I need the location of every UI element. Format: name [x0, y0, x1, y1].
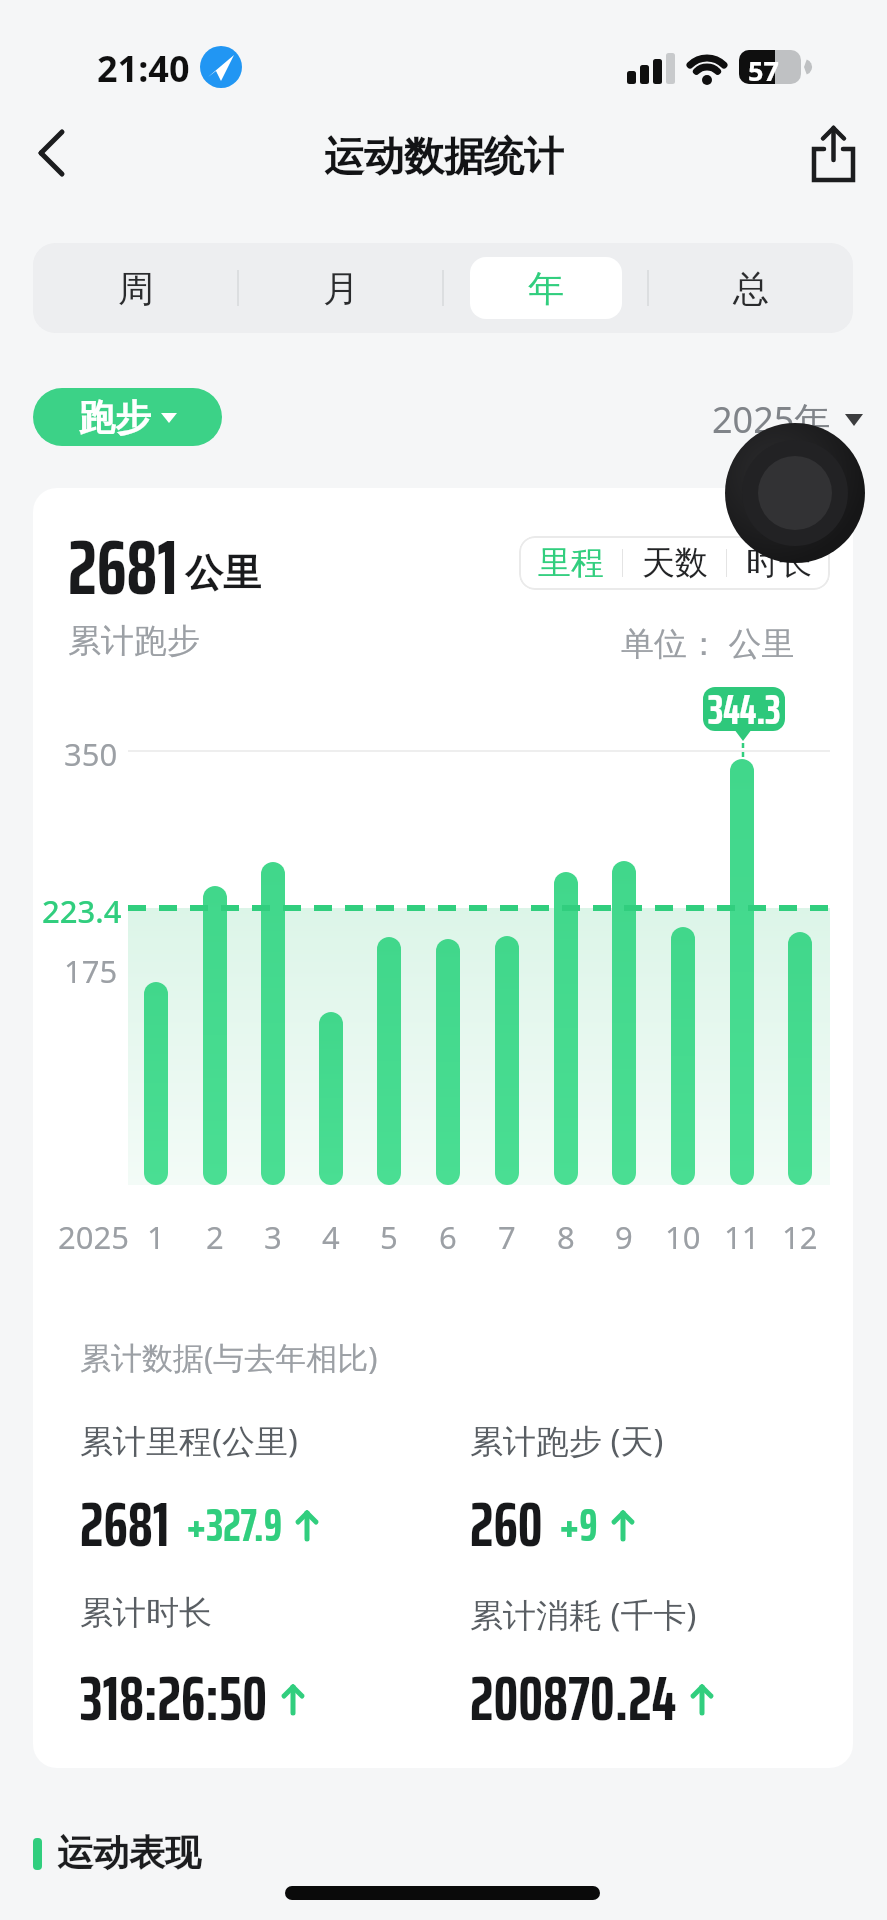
staticText: 累计数据(与去年相比): [80, 1336, 378, 1378]
staticText: 月: [323, 266, 359, 311]
staticText: 8: [557, 1216, 575, 1258]
staticText: 21:40: [97, 44, 190, 93]
staticText: 天数: [642, 542, 708, 584]
staticText: 跑步: [79, 395, 151, 440]
staticText: 5: [380, 1216, 398, 1258]
button[interactable]: 时长: [727, 536, 830, 590]
staticText: 175: [64, 950, 118, 992]
staticText: 1: [147, 1216, 165, 1258]
staticText: 运动数据统计: [324, 131, 564, 181]
staticText: 累计跑步 (天): [470, 1418, 664, 1463]
staticText: 260: [470, 1476, 543, 1574]
staticText: 12: [782, 1216, 818, 1258]
button[interactable]: 跑步: [33, 388, 222, 446]
staticText: 9: [615, 1216, 633, 1258]
staticText: 累计时长: [80, 1592, 212, 1634]
staticText: 周: [118, 266, 154, 311]
staticText: 累计消耗 (千卡): [470, 1592, 697, 1637]
staticText: 57: [748, 52, 779, 89]
staticText: 里程: [538, 542, 604, 584]
staticText: 2: [206, 1216, 224, 1258]
button[interactable]: 年: [443, 243, 648, 333]
staticText: 3: [264, 1216, 282, 1258]
staticText: 11: [724, 1216, 760, 1258]
staticText: 运动表现: [57, 1830, 201, 1875]
staticText: 2025年: [712, 395, 831, 444]
staticText: 2681: [68, 508, 178, 628]
staticText: 2681: [80, 1476, 170, 1574]
button[interactable]: 天数: [623, 536, 726, 590]
staticText: 2025: [58, 1216, 129, 1258]
staticText: 200870.24: [470, 1650, 677, 1748]
staticText: 单位： 公里: [621, 620, 795, 665]
staticText: 累计跑步: [68, 620, 200, 662]
button[interactable]: 里程: [519, 536, 622, 590]
staticText: 10: [665, 1216, 701, 1258]
button[interactable]: 周: [33, 243, 238, 333]
staticText: 4: [322, 1216, 340, 1258]
staticText: 公里: [185, 549, 261, 597]
staticText: 6: [439, 1216, 457, 1258]
staticText: 总: [733, 266, 769, 311]
staticText: 时长: [746, 542, 812, 584]
staticText: 年: [528, 266, 564, 311]
staticText: +9: [559, 1489, 598, 1561]
staticText: +327.9: [186, 1489, 282, 1561]
button[interactable]: 总: [648, 243, 853, 333]
button[interactable]: [805, 122, 861, 188]
button[interactable]: [25, 125, 81, 181]
staticText: 累计里程(公里): [80, 1418, 298, 1463]
staticText: 350: [64, 733, 118, 775]
staticText: 344.3: [708, 676, 781, 740]
staticText: 223.4: [42, 890, 122, 932]
staticText: 7: [498, 1216, 516, 1258]
button[interactable]: 月: [238, 243, 443, 333]
button[interactable]: 2025年: [712, 395, 863, 444]
staticText: 318:26:50: [80, 1650, 268, 1748]
